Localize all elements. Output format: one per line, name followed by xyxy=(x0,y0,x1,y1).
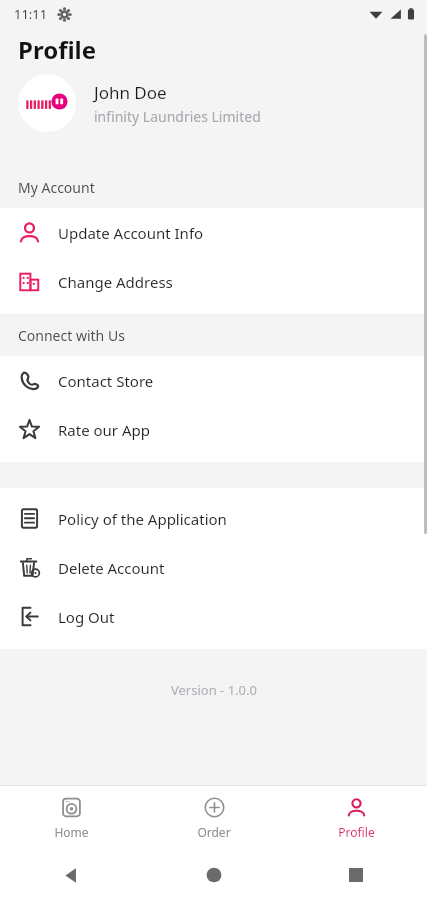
staticText: Update Account Info xyxy=(58,223,204,243)
button[interactable]: Delete Account xyxy=(0,543,427,592)
staticText: Connect with Us xyxy=(18,326,125,345)
staticText: Version - 1.0.0 xyxy=(171,681,257,699)
button[interactable]: Recent apps xyxy=(285,850,427,900)
staticText: Change Address xyxy=(58,272,173,292)
button[interactable]: Change Address xyxy=(0,257,427,306)
button[interactable]: Back xyxy=(0,850,143,900)
staticText: My Account xyxy=(18,178,95,197)
staticText: Log Out xyxy=(58,607,115,627)
staticText: Profile xyxy=(18,33,97,66)
staticText: Order xyxy=(197,824,231,840)
staticText: Policy of the Application xyxy=(58,509,227,529)
staticText: Rate our App xyxy=(58,420,150,440)
button[interactable]: Rate our App xyxy=(0,405,427,454)
button[interactable]: Policy of the Application xyxy=(0,494,427,543)
button[interactable]: Home xyxy=(0,786,143,850)
button[interactable]: John Doe xyxy=(0,70,427,136)
staticText: John Doe xyxy=(94,81,167,104)
button[interactable]: Home xyxy=(143,850,285,900)
staticText: Profile xyxy=(338,824,375,840)
staticText: infinity Laundries Limited xyxy=(94,107,261,126)
staticText: Delete Account xyxy=(58,558,165,578)
button[interactable]: Order xyxy=(143,786,285,850)
staticText: 11:11 xyxy=(14,5,48,23)
staticText: Contact Store xyxy=(58,371,154,391)
button[interactable]: Log Out xyxy=(0,592,427,641)
button[interactable]: Profile xyxy=(285,786,427,850)
button[interactable]: Contact Store xyxy=(0,356,427,405)
button[interactable]: Update Account Info xyxy=(0,208,427,257)
staticText: Home xyxy=(54,824,89,840)
